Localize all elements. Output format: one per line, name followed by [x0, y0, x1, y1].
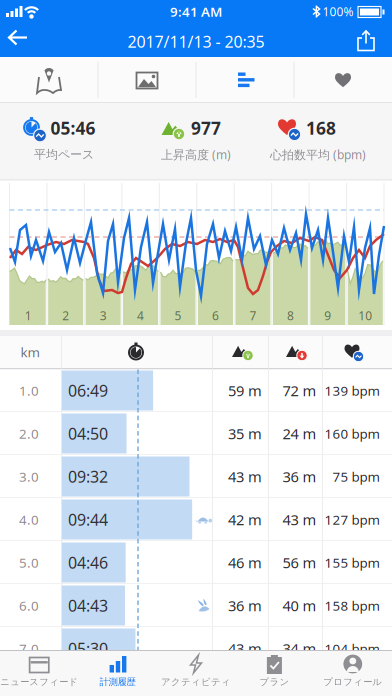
- button[interactable]: ニュースフィード: [0, 650, 84, 695]
- staticText: 1.0: [19, 382, 39, 399]
- staticText: 計測履歴: [100, 676, 136, 688]
- staticText: 5.0: [19, 554, 39, 571]
- staticText: 2.0: [19, 425, 39, 442]
- staticText: 6.0: [19, 597, 39, 614]
- staticText: 36 m: [228, 596, 262, 615]
- staticText: 46 m: [228, 553, 262, 572]
- staticText: 155 bpm: [324, 554, 379, 571]
- staticText: 平均ペース: [34, 147, 94, 162]
- staticText: 75 bpm: [332, 468, 379, 485]
- staticText: 139 bpm: [324, 382, 379, 399]
- staticText: プロフィール: [323, 676, 382, 688]
- staticText: 36 m: [282, 467, 316, 486]
- staticText: 43 m: [282, 510, 316, 529]
- staticText: 心拍数平均 (bpm): [270, 146, 366, 162]
- staticText: 05:46: [50, 116, 95, 139]
- staticText: 04:46: [68, 552, 108, 573]
- staticText: 05:30: [68, 638, 108, 659]
- button[interactable]: Back: [7, 28, 37, 54]
- button[interactable]: Statistics: [209, 60, 281, 100]
- staticText: 59 m: [228, 381, 262, 400]
- staticText: 04:43: [68, 595, 108, 616]
- staticText: 3: [100, 307, 107, 323]
- staticText: 100%: [322, 3, 353, 19]
- staticText: 上昇高度 (m): [161, 146, 231, 162]
- staticText: 158 bpm: [324, 597, 379, 614]
- button[interactable]: 計測履歴: [73, 650, 163, 695]
- staticText: 34 m: [282, 639, 316, 658]
- staticText: 1: [25, 307, 32, 323]
- staticText: 8: [287, 307, 294, 323]
- staticText: 09:44: [68, 509, 108, 530]
- staticText: 104 bpm: [324, 640, 379, 657]
- staticText: 72 m: [282, 381, 316, 400]
- staticText: 06:49: [68, 380, 108, 401]
- button[interactable]: Photos: [111, 60, 183, 100]
- staticText: 42 m: [228, 510, 262, 529]
- staticText: 40 m: [282, 596, 316, 615]
- staticText: 3.0: [19, 468, 39, 485]
- button[interactable]: プロフィール: [308, 650, 392, 695]
- button[interactable]: Share: [356, 29, 376, 53]
- staticText: 04:50: [68, 423, 108, 444]
- staticText: 127 bpm: [324, 511, 379, 528]
- staticText: 43 m: [228, 467, 262, 486]
- staticText: 4: [137, 307, 144, 323]
- button[interactable]: Heart rate: [307, 60, 379, 100]
- staticText: 5: [174, 307, 181, 323]
- staticText: 2017/11/13 - 20:35: [127, 31, 264, 52]
- staticText: 56 m: [282, 553, 316, 572]
- staticText: ニュースフィード: [0, 676, 78, 688]
- staticText: 10: [358, 307, 372, 323]
- staticText: 24 m: [282, 424, 316, 443]
- staticText: 2: [62, 307, 69, 323]
- staticText: 35 m: [228, 424, 262, 443]
- staticText: 160 bpm: [324, 425, 379, 442]
- staticText: アクティビティ: [161, 676, 231, 688]
- staticText: 977: [191, 116, 221, 139]
- staticText: 7.0: [19, 640, 39, 657]
- staticText: 09:32: [68, 466, 108, 487]
- staticText: km: [20, 343, 39, 361]
- staticText: 4.0: [19, 511, 39, 528]
- staticText: 9:41 AM: [170, 3, 222, 20]
- staticText: プラン: [259, 676, 289, 688]
- staticText: 9: [324, 307, 331, 323]
- button[interactable]: プラン: [229, 650, 319, 695]
- staticText: 6: [212, 307, 219, 323]
- button[interactable]: アクティビティ: [151, 650, 241, 695]
- staticText: 168: [306, 116, 336, 139]
- button[interactable]: Map: [13, 60, 85, 100]
- staticText: 43 m: [228, 639, 262, 658]
- staticText: 7: [249, 307, 256, 323]
